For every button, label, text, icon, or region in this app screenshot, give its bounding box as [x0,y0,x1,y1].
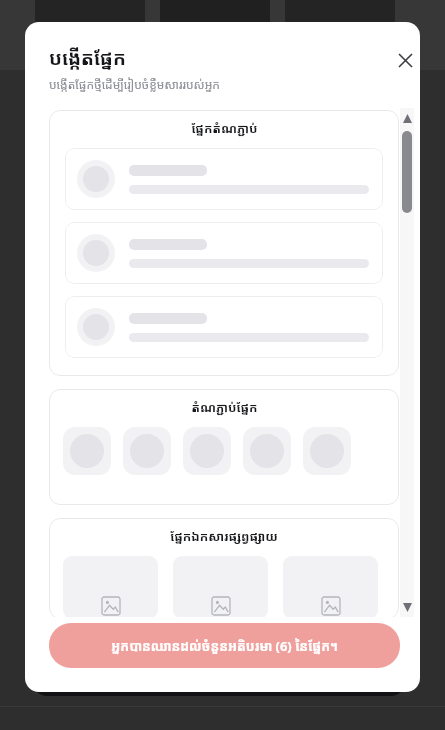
button[interactable]: Section link [303,427,351,475]
button[interactable]: Scroll up [400,108,414,128]
button[interactable] [65,296,383,358]
staticText: បង្កើតផ្នែក [49,45,126,71]
button[interactable]: អ្នកបានឈានដល់ចំនួនអតិបរមា (6) នៃផ្នែក។ [49,623,400,668]
staticText: ផ្នែកឯកសារផ្សព្វផ្សាយ [170,528,278,545]
button[interactable]: Add media [283,556,378,617]
button[interactable] [65,148,383,210]
button[interactable] [65,222,383,284]
button[interactable]: Section link [183,427,231,475]
button[interactable]: Close [387,42,420,78]
button[interactable]: Add media [63,556,158,617]
button[interactable]: Section link [243,427,291,475]
button[interactable]: Scrollbar [402,131,412,213]
button[interactable]: Section link [63,427,111,475]
button[interactable]: Scroll down [400,597,414,617]
button[interactable]: Add media [173,556,268,617]
button[interactable]: Section link [123,427,171,475]
staticText: ផ្នែកតំណភ្ជាប់ [191,120,258,137]
staticText: តំណភ្ជាប់ផ្នែក [191,399,258,416]
staticText: បង្កើតផ្នែកថ្មីដើម្បីរៀបចំខ្លឹមសាររបស់អ្… [49,76,220,92]
staticText: អ្នកបានឈានដល់ចំនួនអតិបរមា (6) នៃផ្នែក។ [111,637,338,655]
